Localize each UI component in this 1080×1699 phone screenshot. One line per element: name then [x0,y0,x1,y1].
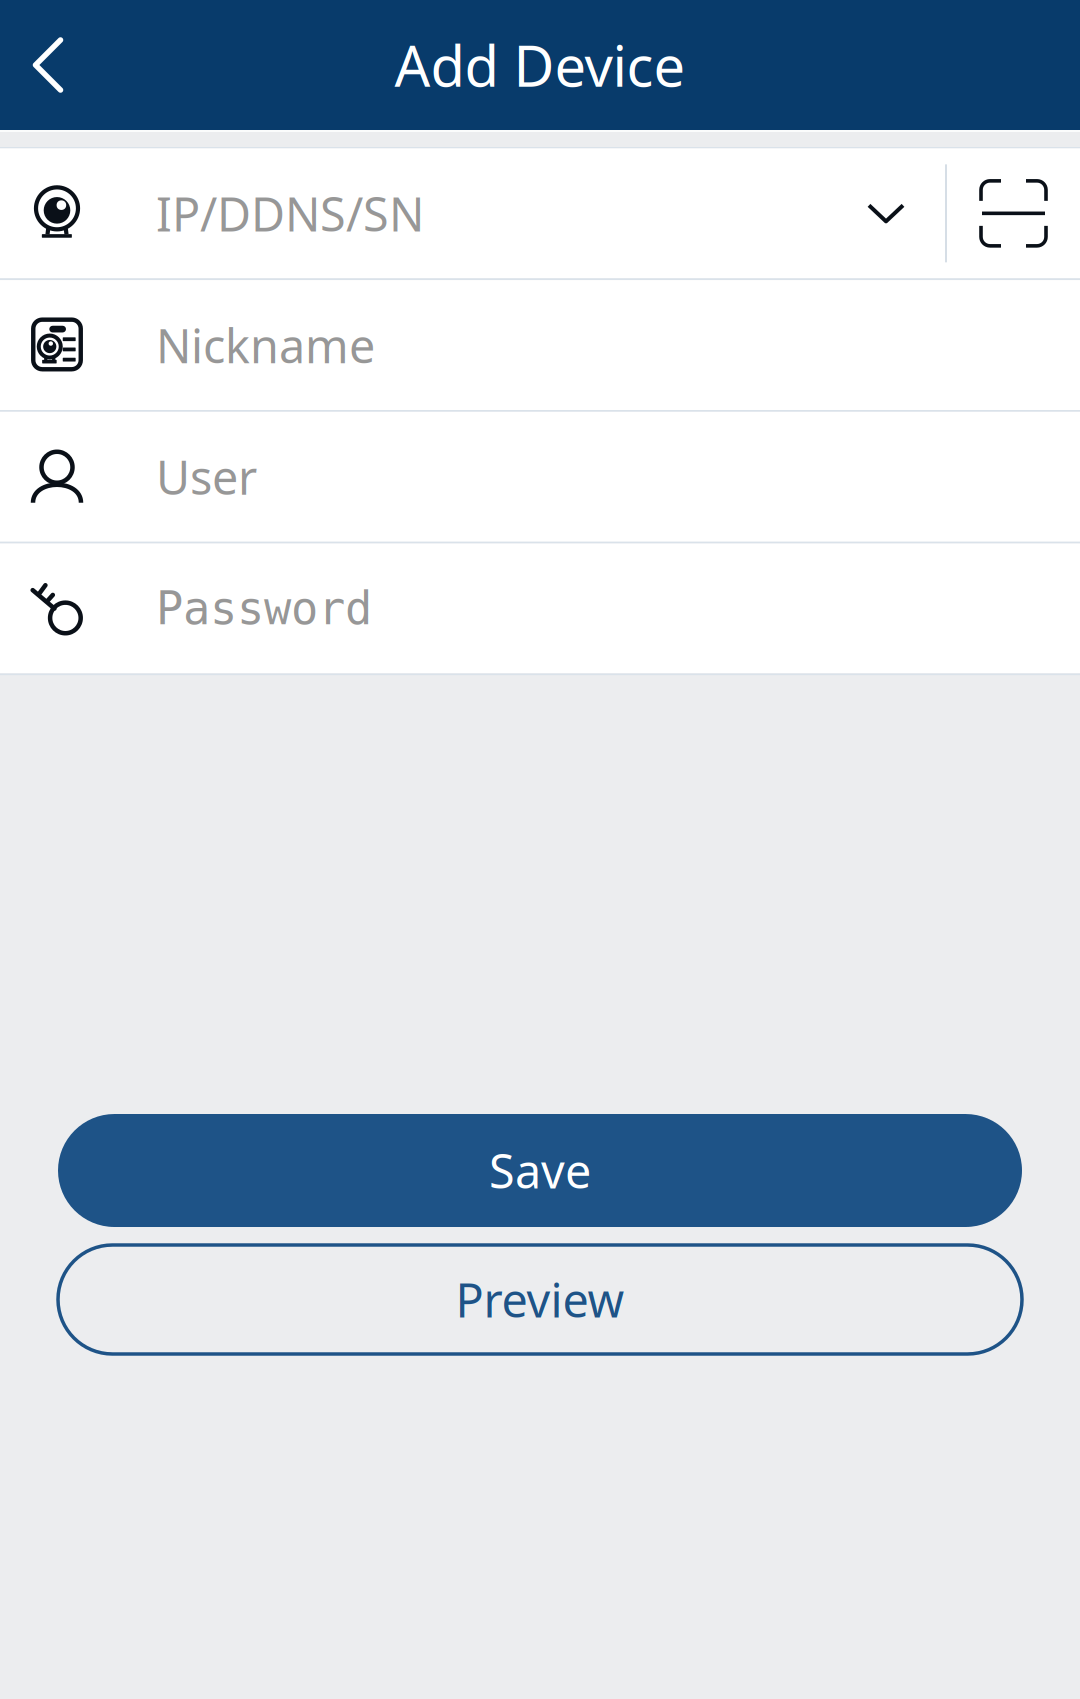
button[interactable]: Back [0,0,96,130]
button[interactable]: Choose address type [827,148,945,278]
button[interactable]: Preview [58,1245,1022,1354]
staticText: Password [156,583,372,634]
button[interactable]: User [0,412,1080,542]
button[interactable]: IP/DDNS/SN [0,148,827,278]
staticText: Preview [455,1268,624,1330]
staticText: Nickname [156,314,375,376]
button[interactable]: Nickname [0,280,1080,410]
staticText: Add Device [394,28,685,102]
button[interactable]: Scan QR code [947,148,1080,278]
staticText: User [156,446,257,508]
button[interactable]: Save [58,1114,1022,1227]
staticText: IP/DDNS/SN [156,182,424,244]
button[interactable]: Password [0,543,1080,673]
staticText: Save [489,1139,591,1201]
